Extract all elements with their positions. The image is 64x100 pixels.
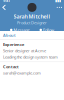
staticText: Sarah Mitchell xyxy=(13,13,50,20)
staticText: Experience xyxy=(3,42,24,47)
button[interactable]: More xyxy=(57,7,62,8)
staticText: sarah@example.com xyxy=(3,70,41,76)
staticText: Product Designer xyxy=(17,20,47,25)
staticText: Senior designer at Acme xyxy=(3,48,46,53)
staticText: Follow xyxy=(43,27,54,33)
staticText: ▮▮▮ xyxy=(55,0,61,3)
staticText: Message xyxy=(13,27,29,33)
button[interactable]: Message xyxy=(10,27,29,33)
staticText: Contact xyxy=(3,64,19,69)
staticText: About xyxy=(3,32,16,38)
button[interactable]: Back xyxy=(2,4,6,10)
button[interactable]: Follow xyxy=(39,27,54,33)
staticText: 9:41 xyxy=(3,0,10,3)
staticText: Leading the design system team xyxy=(3,54,58,60)
